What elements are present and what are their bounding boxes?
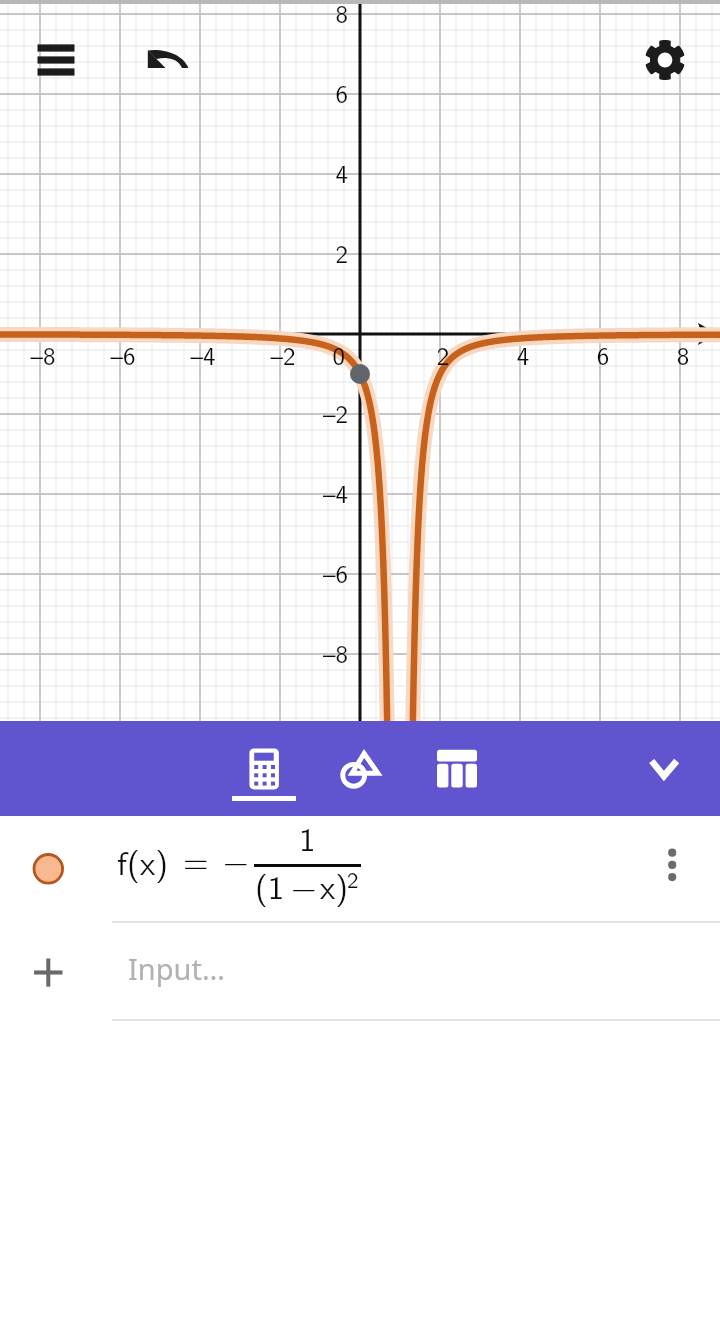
staticText: 2 [248, 234, 348, 271]
staticText: –2 [233, 336, 333, 373]
staticText: (1 [255, 861, 285, 909]
button[interactable]: Table [421, 721, 493, 816]
staticText: − [291, 861, 317, 909]
button[interactable]: Undo [142, 33, 196, 87]
staticText: 4 [248, 154, 348, 191]
staticText: 0 [245, 336, 345, 373]
staticText: 1 [299, 813, 316, 861]
staticText: 6 [553, 336, 653, 373]
button[interactable]: Geometry [324, 721, 396, 816]
staticText: 2 [393, 336, 493, 373]
button[interactable]: Settings [638, 33, 692, 87]
staticText: 4 [473, 336, 573, 373]
staticText: 8 [633, 336, 720, 373]
staticText: –8 [248, 634, 348, 671]
staticText: –6 [248, 554, 348, 591]
staticText: 2 [347, 861, 359, 895]
staticText: Input… [128, 949, 225, 988]
button[interactable]: More options [648, 844, 696, 892]
button[interactable]: Collapse panel [631, 721, 695, 816]
button[interactable]: Menu [32, 36, 80, 84]
staticText: x) [320, 861, 349, 909]
staticText: f(x) [117, 837, 168, 885]
staticText: 6 [248, 74, 348, 111]
staticText: 8 [248, 0, 348, 31]
button[interactable]: Calculator [228, 721, 300, 816]
staticText: –2 [248, 394, 348, 431]
staticText: –8 [0, 336, 93, 373]
staticText: − [223, 835, 249, 883]
button[interactable]: f(x) [0, 816, 720, 921]
staticText: –4 [248, 474, 348, 511]
staticText: = [183, 835, 209, 883]
staticText: –4 [153, 336, 253, 373]
staticText: –6 [73, 336, 173, 373]
button[interactable]: Input… [0, 923, 720, 1019]
